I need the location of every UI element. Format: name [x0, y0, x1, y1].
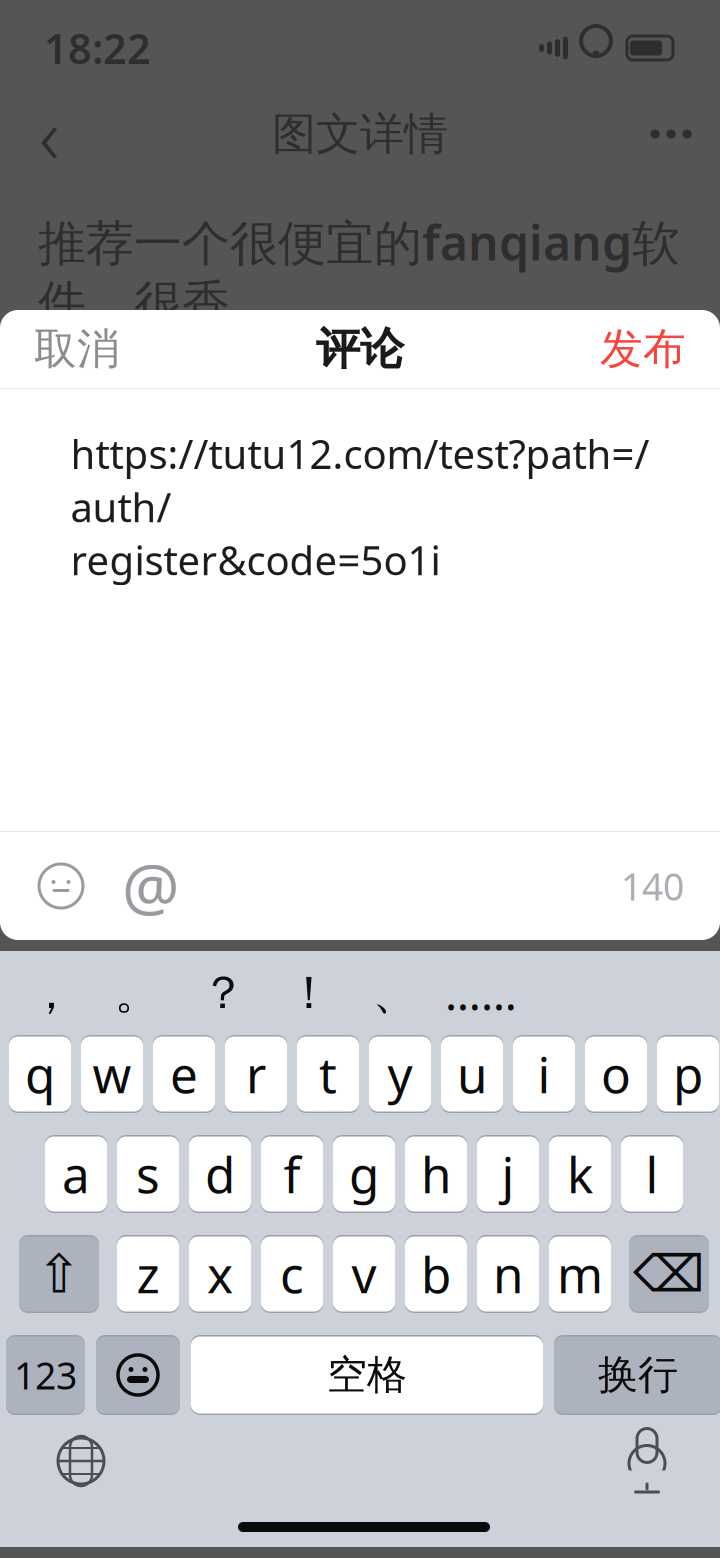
button[interactable]: j [477, 1135, 539, 1213]
button[interactable]: z [117, 1235, 179, 1313]
staticText: 140 [621, 861, 684, 911]
staticText: h [421, 1141, 451, 1207]
staticText: r [246, 1041, 266, 1107]
staticText: n [493, 1241, 523, 1307]
button[interactable]: …… [444, 964, 518, 1022]
staticText: https://tutu12.com/test?path=/auth/ regi… [70, 427, 649, 586]
staticText: 18:22 [44, 21, 151, 75]
button[interactable]: r [225, 1035, 287, 1113]
staticText: q [25, 1041, 55, 1107]
staticText: l [645, 1141, 658, 1207]
button[interactable]: x [189, 1235, 251, 1313]
staticText: c [280, 1241, 304, 1307]
button[interactable]: Emoji [96, 1335, 180, 1415]
staticText: @ [122, 843, 180, 928]
button[interactable]: Insert emoji [36, 861, 86, 911]
staticText: 你牛二爷 [108, 372, 256, 418]
button[interactable]: 、 [358, 964, 432, 1022]
button[interactable]: Switch keyboard [54, 1434, 108, 1488]
staticText: t [319, 1041, 337, 1107]
staticText: ， [28, 965, 73, 1021]
button[interactable]: Back [14, 99, 84, 169]
staticText: p [673, 1041, 703, 1107]
staticText: m [557, 1241, 603, 1307]
staticText: b [421, 1241, 451, 1307]
staticText: k [567, 1141, 593, 1207]
button[interactable]: s [117, 1135, 179, 1213]
button[interactable]: h [405, 1135, 467, 1213]
staticText: j [501, 1141, 514, 1207]
staticText: 。 [114, 965, 159, 1021]
staticText: g [349, 1141, 379, 1207]
staticText: x [207, 1241, 233, 1307]
button[interactable]: t [297, 1035, 359, 1113]
staticText: u [457, 1041, 487, 1107]
button[interactable]: i [513, 1035, 575, 1113]
staticText: o [601, 1041, 631, 1107]
button[interactable]: a [45, 1135, 107, 1213]
button[interactable]: Numbers [6, 1335, 85, 1415]
staticText: c [280, 1241, 304, 1307]
staticText: i [537, 1041, 550, 1107]
staticText: 换行 [598, 1350, 678, 1399]
staticText: n [493, 1241, 523, 1307]
button[interactable]: Mention someone [124, 859, 178, 913]
staticText: 取消 [34, 323, 120, 375]
button[interactable]: k [549, 1135, 611, 1213]
button[interactable]: d [189, 1135, 251, 1213]
staticText: ‹ [39, 83, 59, 185]
button[interactable]: c [261, 1235, 323, 1313]
staticText: m [557, 1241, 603, 1307]
button[interactable]: ！ [272, 964, 346, 1022]
button[interactable]: w [81, 1035, 143, 1113]
button[interactable]: y [369, 1035, 431, 1113]
button[interactable]: n [477, 1235, 539, 1313]
staticText: z [136, 1241, 159, 1307]
staticText: i [537, 1041, 550, 1107]
staticText: d [205, 1141, 235, 1207]
button[interactable]: Shift [19, 1235, 99, 1313]
staticText: g [349, 1141, 379, 1207]
button[interactable]: p [657, 1035, 719, 1113]
staticText: …… [445, 963, 517, 1023]
button[interactable]: 发布 [566, 301, 720, 397]
staticText: y [387, 1041, 412, 1107]
staticText: 空格 [327, 1350, 407, 1399]
staticText: s [136, 1141, 160, 1207]
staticText: p [673, 1041, 703, 1107]
button[interactable]: g [333, 1135, 395, 1213]
button[interactable]: u [441, 1035, 503, 1113]
button[interactable]: 换行 [554, 1335, 720, 1415]
staticText: 、 [372, 965, 417, 1021]
button[interactable]: More options [636, 99, 706, 169]
staticText: 图文详情 [272, 107, 448, 161]
staticText: l [645, 1141, 658, 1207]
staticText: 发布 [600, 323, 686, 375]
staticText: v [351, 1241, 376, 1307]
button[interactable]: b [405, 1235, 467, 1313]
button[interactable]: 取消 [0, 301, 154, 397]
button[interactable]: 。 [100, 964, 174, 1022]
button[interactable]: m [549, 1235, 611, 1313]
button[interactable]: Dictate [620, 1433, 674, 1489]
staticText: j [501, 1141, 514, 1207]
button[interactable]: Delete [629, 1235, 709, 1313]
button[interactable]: 空格 [191, 1335, 543, 1415]
button[interactable]: q [9, 1035, 71, 1113]
button[interactable]: v [333, 1235, 395, 1313]
staticText: f [283, 1141, 300, 1207]
staticText: a [62, 1141, 90, 1207]
staticText: 评论 [316, 322, 404, 376]
button[interactable]: ， [14, 964, 88, 1022]
staticText: t [319, 1041, 337, 1107]
staticText: e [170, 1041, 198, 1107]
staticText: q [25, 1041, 55, 1107]
button[interactable]: e [153, 1035, 215, 1113]
button[interactable]: o [585, 1035, 647, 1113]
staticText: ？ [200, 965, 245, 1021]
button[interactable]: l [621, 1135, 683, 1213]
staticText: o [601, 1041, 631, 1107]
button[interactable]: f [261, 1135, 323, 1213]
staticText: w [92, 1041, 131, 1107]
button[interactable]: ？ [186, 964, 260, 1022]
